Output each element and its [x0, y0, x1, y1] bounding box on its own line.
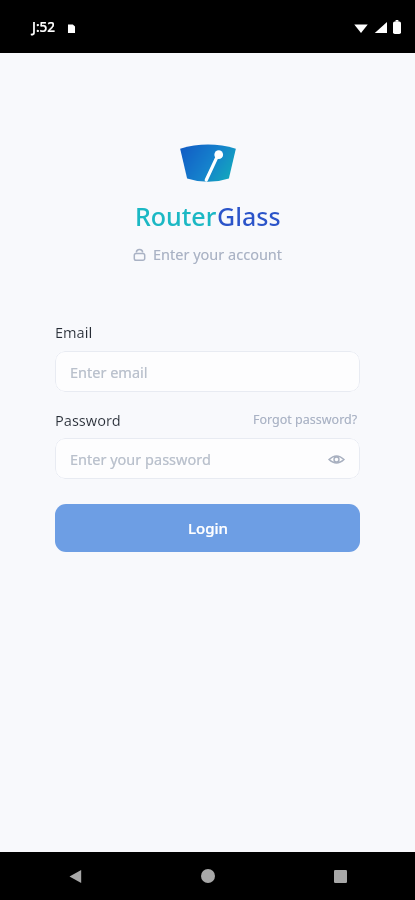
staticText: Enter your password [70, 449, 211, 469]
button[interactable]: Show password [326, 449, 346, 469]
staticText: Enter email [70, 362, 148, 382]
staticText: Email [55, 322, 93, 342]
button[interactable]: Login [55, 504, 360, 552]
staticText: Login [188, 518, 228, 538]
staticText: Glass [217, 199, 281, 233]
button[interactable]: Back [58, 859, 92, 893]
staticText: Forgot password? [253, 411, 358, 428]
button[interactable]: Recent apps [323, 859, 357, 893]
staticText: J:52 [32, 18, 56, 36]
button[interactable]: Home [191, 859, 225, 893]
button[interactable]: Forgot password? [251, 409, 360, 430]
staticText: Enter your account [153, 244, 283, 264]
staticText: Password [55, 410, 121, 430]
button[interactable]: Enter email [55, 351, 360, 392]
button[interactable]: Enter your password [55, 438, 360, 479]
staticText: Router [135, 199, 217, 233]
